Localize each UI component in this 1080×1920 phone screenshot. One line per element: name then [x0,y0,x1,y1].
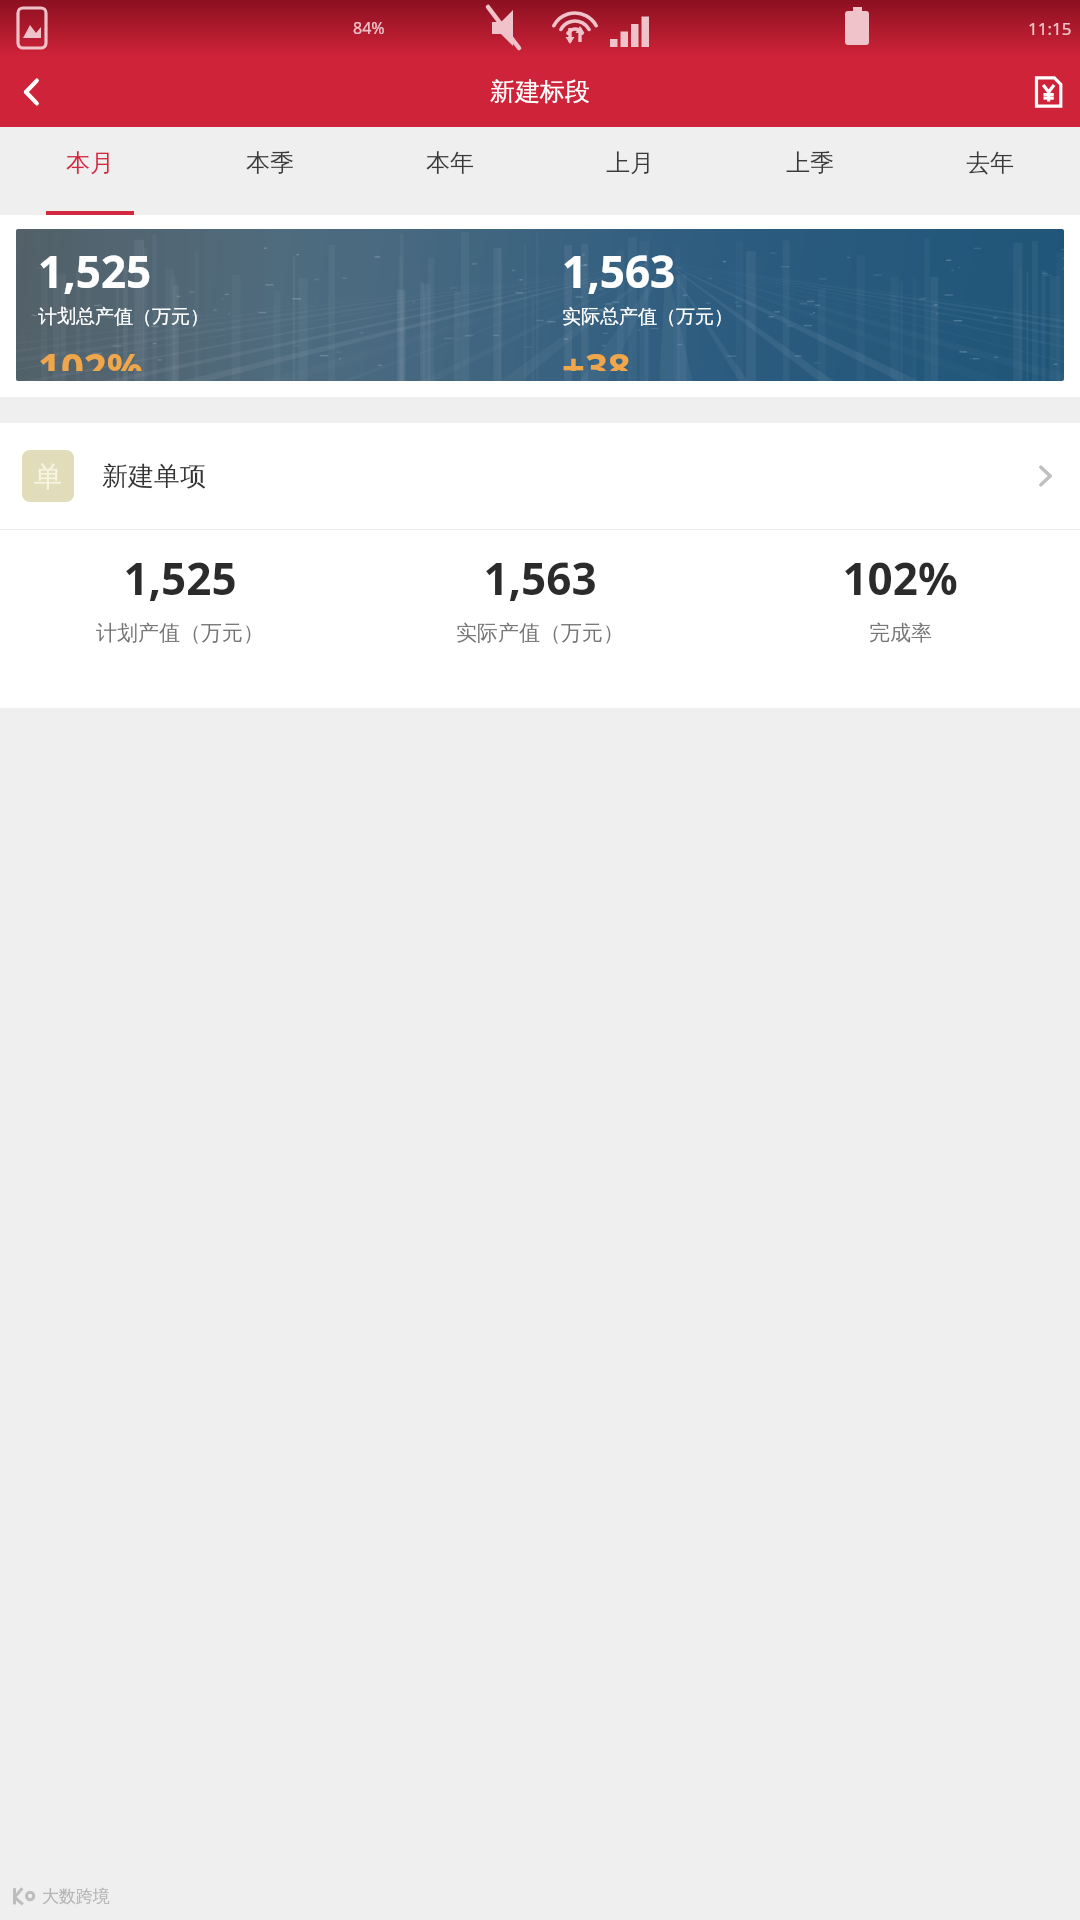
staticText: 去年 [966,148,1014,178]
staticText: 实际总产值（万元） [562,305,733,329]
staticText: 102% [842,548,958,608]
button[interactable]: 单 [0,423,1080,529]
staticText: 本季 [246,148,294,178]
button[interactable]: 本季 [180,127,360,215]
staticText: 新建单项 [102,460,206,493]
staticText: 102% [38,339,143,371]
staticText: 大数跨境 [42,1886,110,1907]
button[interactable]: 上月 [540,127,720,215]
staticText: 上月 [606,148,654,178]
staticText: 84% [353,17,385,39]
staticText: 新建标段 [490,76,590,107]
staticText: 本年 [426,148,474,178]
button[interactable]: 1,525 [16,229,1064,381]
staticText: 11:15 [1028,17,1072,40]
staticText: 计划总产值（万元） [38,305,209,329]
button[interactable]: 本年 [360,127,540,215]
staticText: 1,525 [38,241,152,301]
button[interactable]: 本月 [0,127,180,215]
staticText: 本月 [66,148,114,178]
button[interactable]: 1,563 [360,548,720,708]
staticText: 上季 [786,148,834,178]
staticText: +38 [562,339,631,371]
staticText: 单 [34,459,62,494]
button[interactable]: 102% [720,548,1080,708]
staticText: 1,525 [123,548,237,608]
staticText: 1,563 [483,548,597,608]
staticText: 完成率 [869,620,932,646]
staticText: 实际产值（万元） [456,620,624,646]
button[interactable]: 1,525 [0,548,360,708]
button[interactable]: Back [0,60,64,124]
button[interactable]: Invoice [1016,60,1080,124]
staticText: 计划产值（万元） [96,620,264,646]
button[interactable]: 上季 [720,127,900,215]
button[interactable]: 去年 [900,127,1080,215]
staticText: 1,563 [562,241,676,301]
